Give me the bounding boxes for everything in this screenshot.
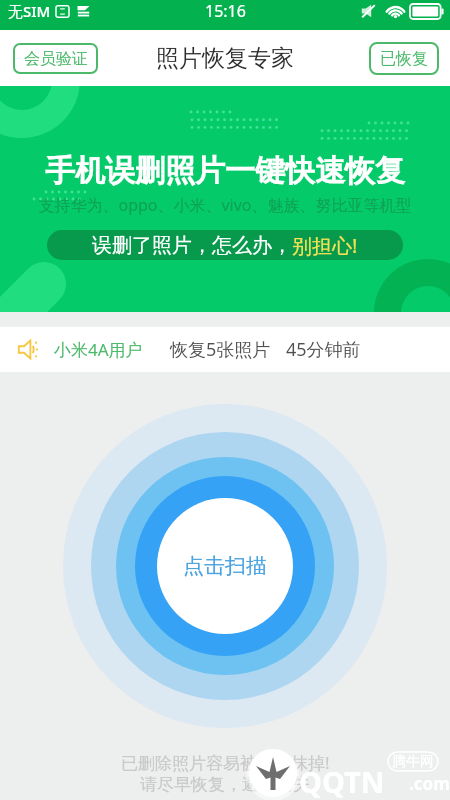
staticText: 小米4A用户 xyxy=(54,338,143,361)
staticText: 45分钟前 xyxy=(286,337,361,362)
button[interactable]: 小米4A用户 xyxy=(0,327,450,372)
staticText: 照片恢复专家 xyxy=(156,44,294,73)
staticText: 别担心! xyxy=(292,232,358,259)
staticText: 已恢复 xyxy=(380,49,428,69)
staticText: 会员验证 xyxy=(24,49,88,69)
staticText: 恢复5张照片 xyxy=(170,337,271,362)
staticText: .com xyxy=(409,772,450,795)
staticText: 误删了照片，怎么办， xyxy=(92,233,292,258)
button[interactable]: 已恢复 xyxy=(369,42,439,75)
staticText: QQTN xyxy=(299,762,385,800)
button[interactable]: 会员验证 xyxy=(13,43,98,74)
staticText: 15:16 xyxy=(205,0,246,22)
staticText: 请尽早恢复，避免丢失 xyxy=(140,774,310,795)
staticText: 已删除照片容易被覆盖抹掉! xyxy=(121,751,330,774)
staticText: 腾牛网 xyxy=(392,753,434,771)
staticText: 手机误删照片一键快速恢复 xyxy=(0,152,450,190)
staticText: 支持华为、oppo、小米、vivo、魅族、努比亚等机型 xyxy=(0,194,450,216)
button[interactable]: 点击扫描 xyxy=(157,498,293,634)
staticText: 无SIM xyxy=(8,1,51,21)
staticText: 点击扫描 xyxy=(183,553,267,579)
button[interactable]: 误删了照片，怎么办， xyxy=(47,230,403,260)
